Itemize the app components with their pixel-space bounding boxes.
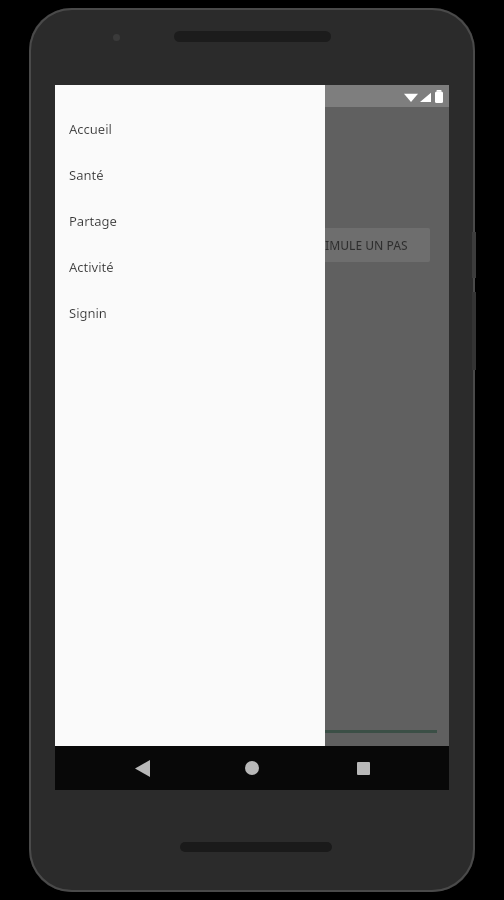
button[interactable]: Activité xyxy=(55,244,325,290)
button[interactable]: SIMULE UN PAS xyxy=(295,228,430,262)
staticText: Santé xyxy=(69,166,104,184)
staticText: Signin xyxy=(69,304,107,322)
button[interactable]: Accueil xyxy=(55,106,325,152)
staticText: Activité xyxy=(69,258,114,276)
button[interactable]: Partage xyxy=(55,198,325,244)
staticText: Accueil xyxy=(69,120,112,138)
button[interactable]: Santé xyxy=(55,152,325,198)
button[interactable]: Home xyxy=(228,746,276,790)
staticText: Partage xyxy=(69,212,117,230)
button[interactable]: Back xyxy=(118,746,166,790)
button[interactable]: Recent apps xyxy=(339,746,387,790)
staticText: SIMULE UN PAS xyxy=(318,237,408,253)
button[interactable]: Signin xyxy=(55,290,325,336)
